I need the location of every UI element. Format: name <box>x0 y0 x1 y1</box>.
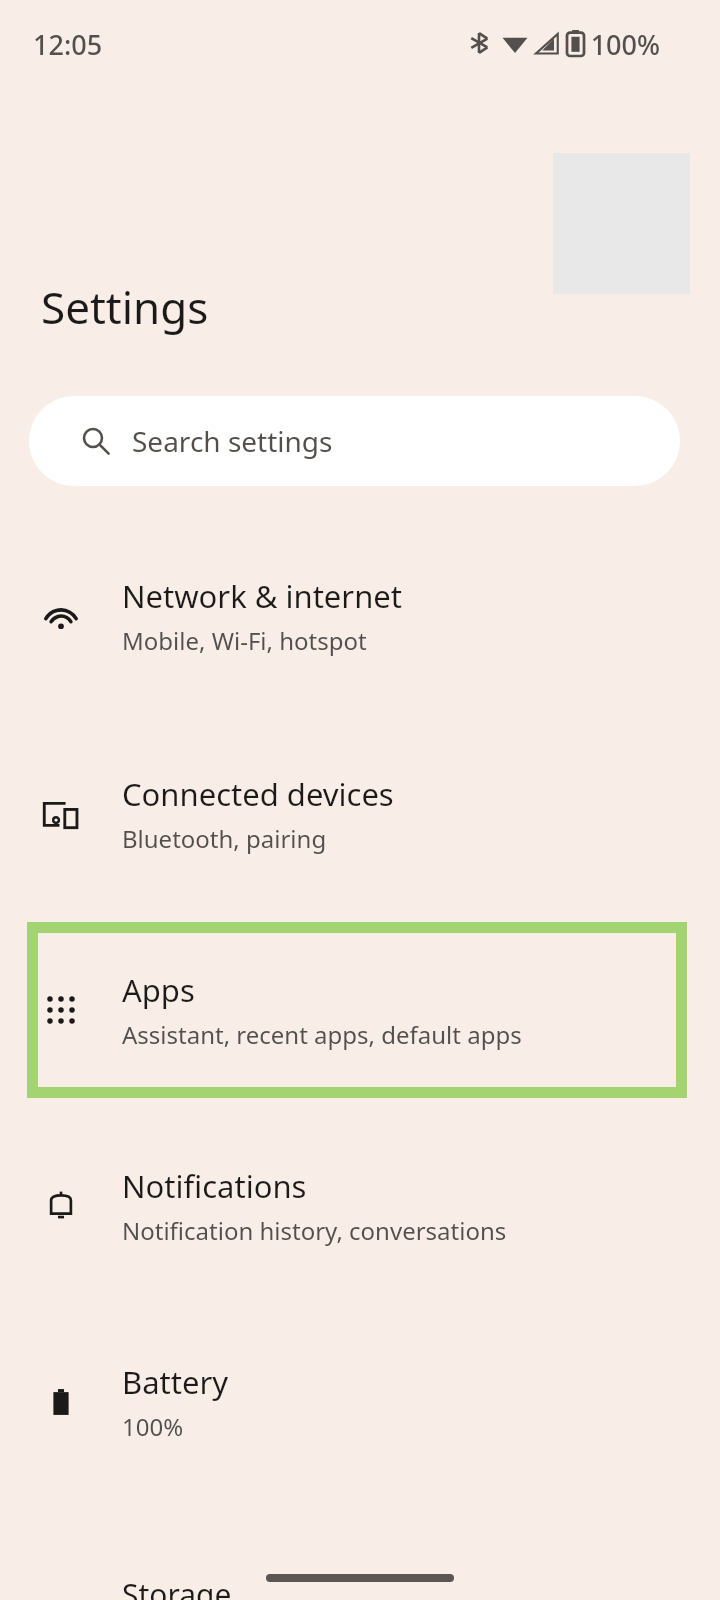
button[interactable]: Apps <box>0 944 720 1076</box>
staticText: 12:05 <box>33 26 103 63</box>
staticText: Mobile, Wi-Fi, hotspot <box>122 624 367 657</box>
staticText: Apps <box>122 969 195 1011</box>
button[interactable]: Network & internet <box>0 550 720 682</box>
button[interactable]: Search <box>29 396 680 486</box>
staticText: Notification history, conversations <box>122 1214 507 1247</box>
staticText: Settings <box>41 277 209 337</box>
button[interactable]: Connected devices <box>0 748 720 880</box>
staticText: Battery <box>122 1361 229 1403</box>
other: Search <box>81 426 111 456</box>
staticText: Search settings <box>132 422 333 460</box>
staticText: Network & internet <box>122 575 402 617</box>
staticText: Connected devices <box>122 773 394 815</box>
button[interactable]: Notifications <box>0 1140 720 1272</box>
staticText: Assistant, recent apps, default apps <box>122 1018 522 1051</box>
staticText: Storage <box>122 1574 232 1600</box>
staticText: 100% <box>590 26 660 60</box>
staticText: Notifications <box>122 1165 307 1207</box>
staticText: 100% <box>122 1410 184 1443</box>
button[interactable]: Battery <box>0 1336 720 1468</box>
staticText: Bluetooth, pairing <box>122 822 327 855</box>
